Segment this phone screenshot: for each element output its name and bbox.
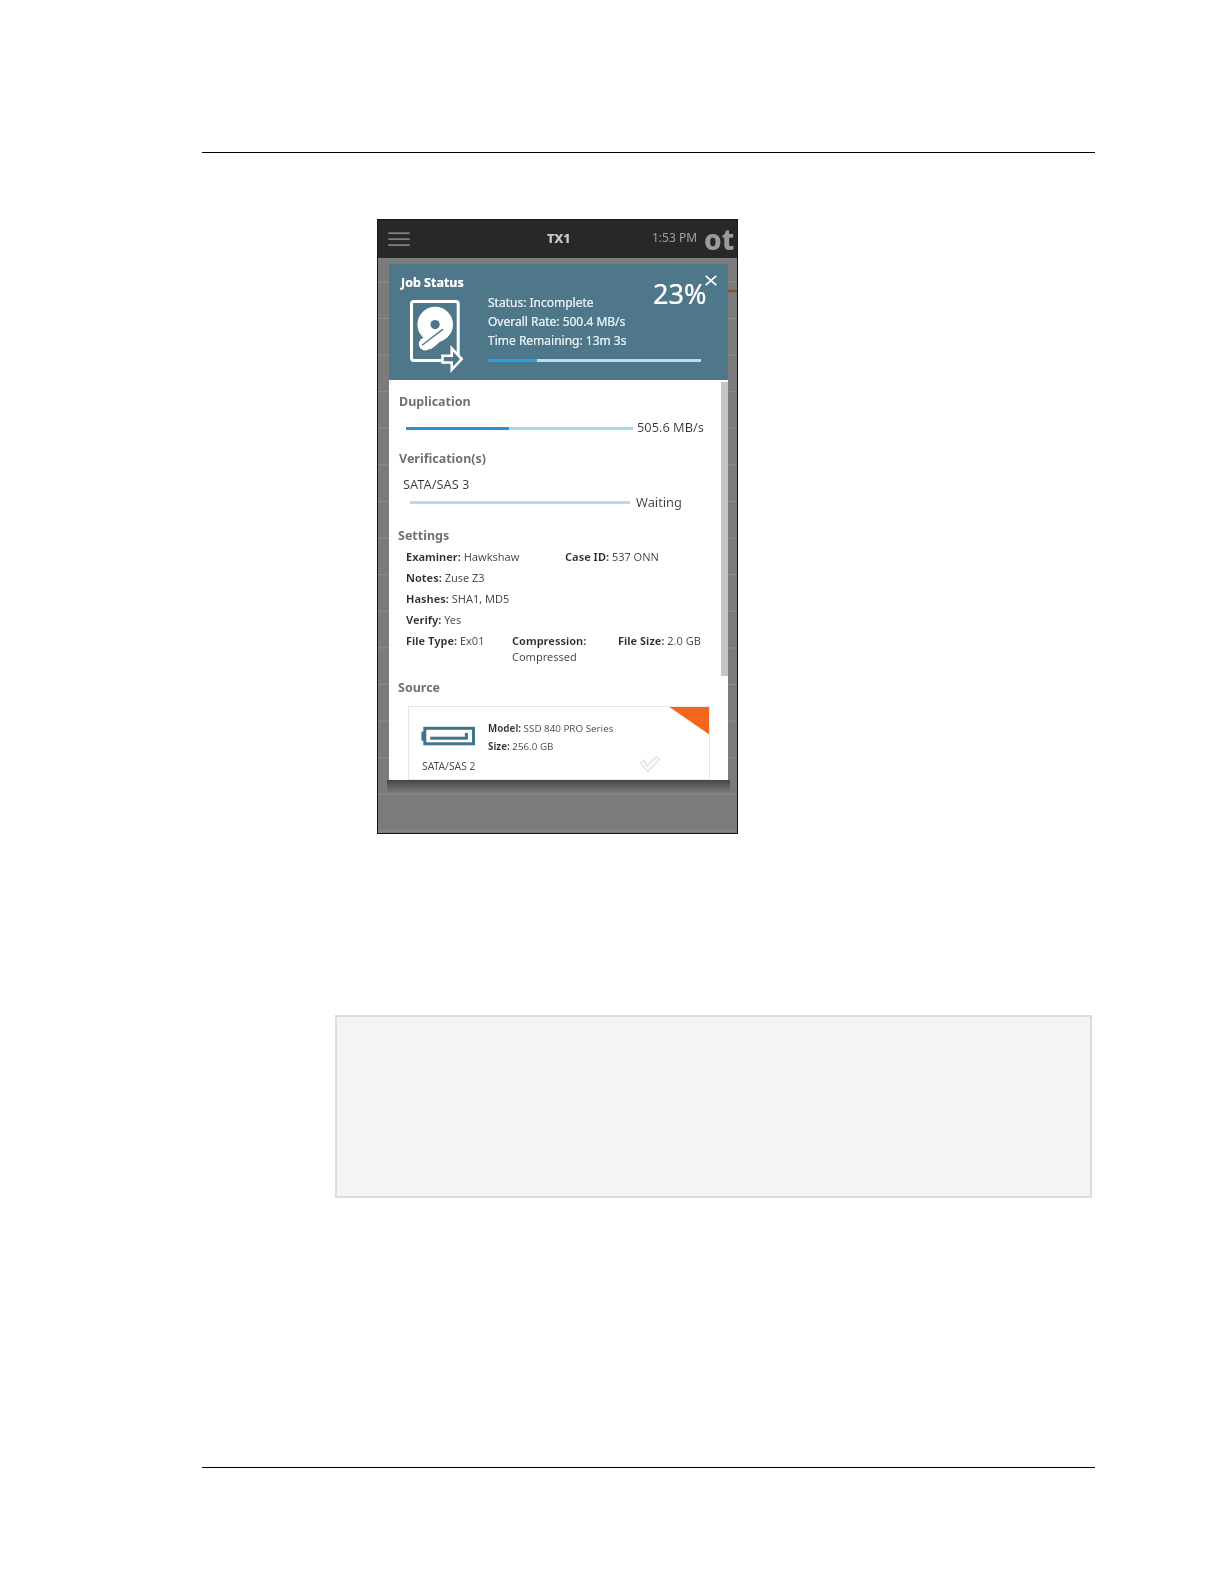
staticText: 505.6 MB/s: [637, 418, 704, 435]
staticText: Settings: [398, 527, 450, 544]
staticText: Overall Rate: 500.4 MB/s: [488, 313, 626, 329]
staticText: Case ID: 537 ONN: [565, 549, 659, 564]
staticText: Job Status: [401, 274, 464, 291]
staticText: Hashes: SHA1, MD5: [406, 591, 510, 606]
staticText: 1:53 PM: [652, 229, 698, 245]
staticText: Waiting: [636, 493, 682, 510]
button[interactable]: Close: [702, 272, 720, 290]
staticText: Compressed: [512, 649, 577, 664]
staticText: Verify: Yes: [406, 612, 462, 627]
staticText: File Type: Ex01: [406, 633, 485, 648]
staticText: Compression:: [512, 633, 590, 648]
staticText: ot: [704, 220, 735, 258]
staticText: 23%: [653, 275, 707, 312]
staticText: Size: 256.0 GB: [488, 740, 554, 753]
staticText: File Size: 2.0 GB: [618, 633, 701, 648]
staticText: Status: Incomplete: [488, 294, 594, 310]
staticText: SATA/SAS 2: [422, 759, 476, 773]
button[interactable]: Menu: [384, 227, 414, 251]
button[interactable]: Model: SSD 840 PRO Series: [408, 706, 710, 780]
staticText: Duplication: [399, 393, 471, 410]
staticText: Notes: Zuse Z3: [406, 570, 485, 585]
staticText: Source: [398, 679, 441, 696]
staticText: Time Remaining: 13m 3s: [488, 332, 627, 348]
staticText: Verification(s): [399, 450, 487, 467]
staticText: SATA/SAS 3: [403, 475, 470, 492]
staticText: TX1: [547, 229, 571, 247]
staticText: Examiner: Hawkshaw: [406, 549, 520, 564]
staticText: Model: SSD 840 PRO Series: [488, 722, 614, 735]
